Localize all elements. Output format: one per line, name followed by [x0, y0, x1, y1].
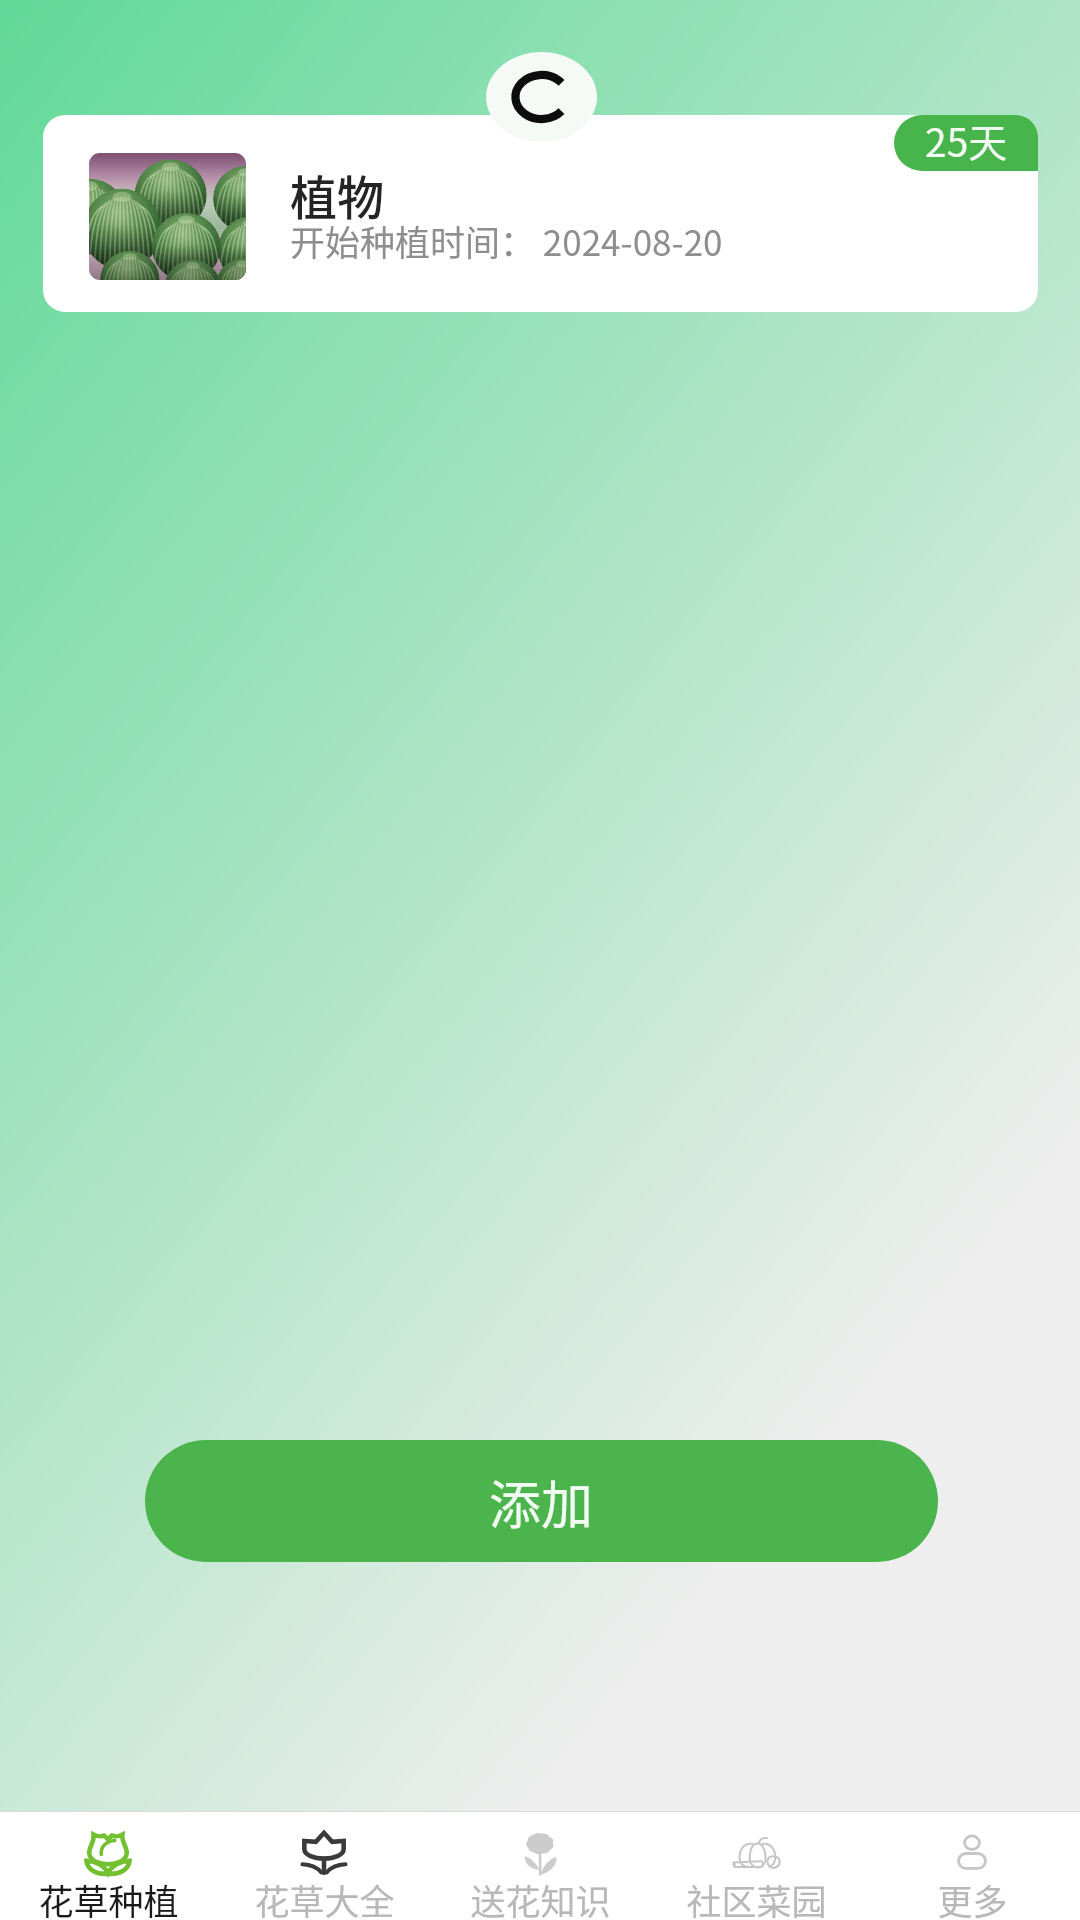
button[interactable]: 送花知识	[432, 1812, 648, 1920]
button[interactable]: 添加	[145, 1440, 938, 1562]
button[interactable]: 25天	[894, 115, 1038, 171]
staticText: 开始种植时间： 2024-08-20	[290, 215, 723, 266]
staticText: 植物	[290, 160, 384, 228]
staticText: 添加	[489, 1464, 594, 1539]
staticText: 花草种植	[38, 1874, 179, 1920]
button[interactable]: 花草大全	[216, 1812, 432, 1920]
staticText: 25天	[925, 115, 1008, 168]
button[interactable]: Logo	[486, 52, 597, 142]
staticText: 更多	[937, 1874, 1008, 1920]
button[interactable]: 花草种植	[0, 1812, 216, 1920]
staticText: 花草大全	[254, 1874, 395, 1920]
button[interactable]: 社区菜园	[648, 1812, 864, 1920]
button[interactable]: 植物	[43, 115, 1038, 312]
button[interactable]: 更多	[864, 1812, 1080, 1920]
staticText: 社区菜园	[686, 1874, 827, 1920]
staticText: 送花知识	[470, 1874, 611, 1920]
